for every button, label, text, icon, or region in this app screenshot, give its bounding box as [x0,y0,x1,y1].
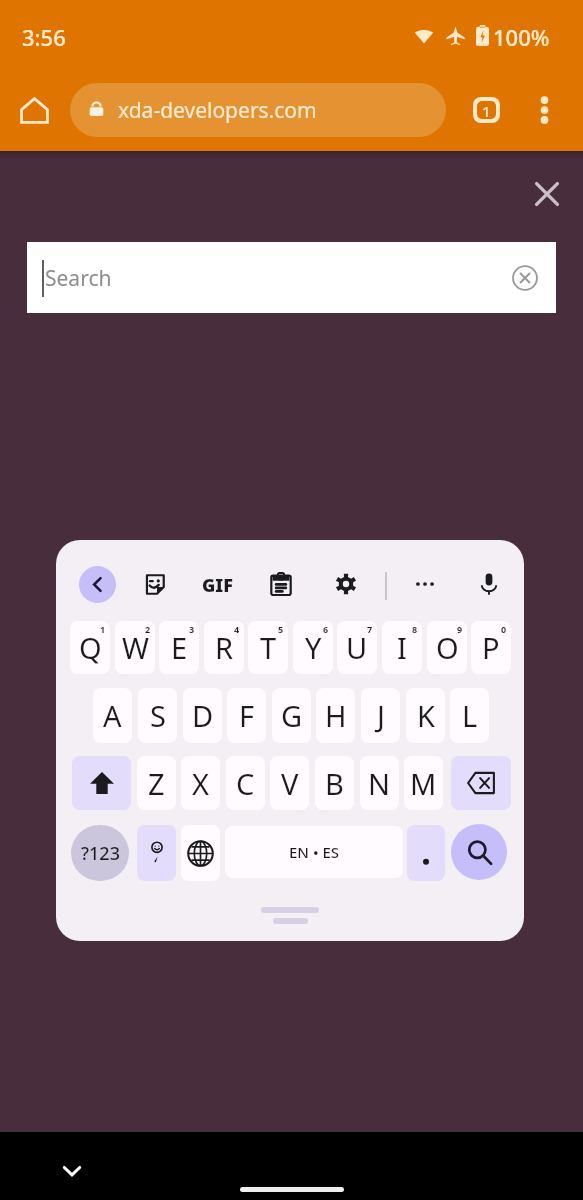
button[interactable]: Z [137,756,176,810]
staticText: N [368,764,391,803]
button[interactable]: EN • ES [225,826,403,878]
button[interactable]: Search [451,824,507,880]
staticText: O [436,628,459,667]
staticText: 3 [189,623,195,635]
staticText: 9 [457,623,463,635]
button[interactable]: U [337,621,377,674]
staticText: ?123 [81,841,120,866]
staticText: 100% [493,22,550,52]
staticText: K [417,696,435,735]
button[interactable]: H [316,688,355,743]
button[interactable]: W [115,621,155,674]
button[interactable]: ?123 [71,825,129,881]
staticText: 1 [482,101,491,119]
staticText: 3:56 [22,22,66,52]
staticText: GIF [202,573,233,598]
staticText: D [192,696,214,735]
button[interactable]: Q [70,621,110,674]
button[interactable]: L [450,688,489,743]
staticText: M [410,764,437,803]
button[interactable]: P [471,621,511,674]
button[interactable]: Tabs [464,87,509,132]
button[interactable]: Clear [503,256,547,300]
button[interactable]: D [183,688,222,743]
staticText: E [171,628,188,667]
staticText: xda-developers.com [118,96,317,125]
button[interactable]: xda-developers.com [70,83,446,137]
staticText: L [462,696,478,735]
staticText: V [281,764,299,803]
button[interactable]: C [226,756,265,810]
staticText: 6 [323,623,329,635]
staticText: P [482,628,500,667]
button[interactable]: Period [407,825,445,881]
button[interactable]: A [93,688,132,743]
button[interactable]: Voice input [471,566,507,602]
button[interactable]: Settings [328,566,364,602]
staticText: X [192,764,209,803]
button[interactable]: M [404,756,443,810]
staticText: Search [45,264,112,293]
button[interactable]: O [427,621,467,674]
staticText: Y [305,628,322,667]
button[interactable]: X [181,756,220,810]
staticText: A [103,696,122,735]
button[interactable]: Backspace [451,756,511,810]
staticText: 5 [278,623,284,635]
button[interactable]: GIF [199,569,235,601]
button[interactable]: R [204,621,244,674]
button[interactable]: Home [11,87,58,134]
staticText: 8 [412,623,418,635]
staticText: J [377,696,385,735]
staticText: 0 [501,623,507,635]
button[interactable]: Search [27,242,556,313]
staticText: 7 [367,623,373,635]
staticText: 4 [234,623,240,635]
staticText: C [236,764,255,803]
button[interactable]: Hide keyboard [48,1147,96,1195]
staticText: W [122,628,149,667]
button[interactable]: More options [522,88,566,132]
staticText: Z [148,764,165,803]
staticText: U [346,628,368,667]
button[interactable]: Clipboard [263,566,299,602]
button[interactable]: Language [181,825,220,881]
button[interactable]: K [406,688,445,743]
button[interactable]: N [360,756,399,810]
staticText: Q [79,628,102,667]
staticText: R [215,628,234,667]
button[interactable]: T [248,621,288,674]
button[interactable]: B [315,756,354,810]
staticText: EN • ES [289,842,340,862]
button[interactable]: E [159,621,199,674]
button[interactable]: Close [523,170,571,218]
staticText: H [325,696,347,735]
button[interactable]: F [227,688,266,743]
staticText: T [260,628,277,667]
staticText: B [325,764,344,803]
button[interactable]: Emoji [137,825,176,881]
staticText: G [281,696,303,735]
staticText: F [239,696,255,735]
button[interactable]: G [272,688,311,743]
button[interactable]: J [361,688,400,743]
button[interactable]: Stickers [136,566,172,602]
button[interactable]: S [138,688,177,743]
button[interactable]: I [382,621,422,674]
staticText: 1 [100,623,106,635]
staticText: S [150,696,166,735]
button[interactable]: Y [293,621,333,674]
staticText: 2 [145,623,151,635]
button[interactable]: More [407,566,443,602]
button[interactable]: Back [79,566,116,603]
button[interactable]: Shift [72,756,131,810]
staticText: I [397,628,407,667]
button[interactable]: V [270,756,309,810]
